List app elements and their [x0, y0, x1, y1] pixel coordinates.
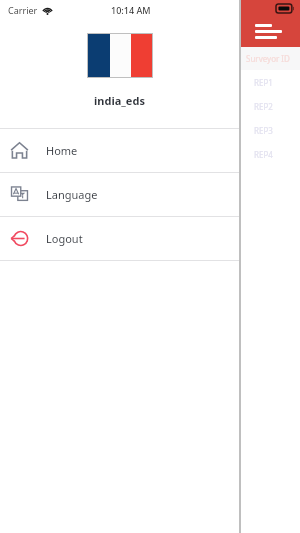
staticText: REP2 [254, 101, 273, 112]
button[interactable]: REP3 [241, 118, 300, 142]
staticText: Language [46, 187, 98, 202]
staticText: Logout [46, 231, 83, 246]
button[interactable]: Menu [255, 24, 282, 39]
button[interactable]: REP4 [241, 142, 300, 166]
staticText: REP4 [254, 149, 273, 160]
staticText: REP3 [254, 125, 273, 136]
staticText: Home [46, 143, 78, 158]
button[interactable]: Home [0, 129, 239, 172]
button[interactable]: REP1 [241, 70, 300, 94]
staticText: Surveyor ID [246, 53, 290, 64]
button[interactable]: Logout [0, 217, 239, 260]
button[interactable]: Language [0, 173, 239, 216]
staticText: REP1 [254, 77, 273, 88]
staticText: 10:14 AM [111, 4, 151, 16]
button[interactable]: REP2 [241, 94, 300, 118]
staticText: india_eds [94, 93, 145, 108]
staticText: Carrier [8, 4, 38, 16]
